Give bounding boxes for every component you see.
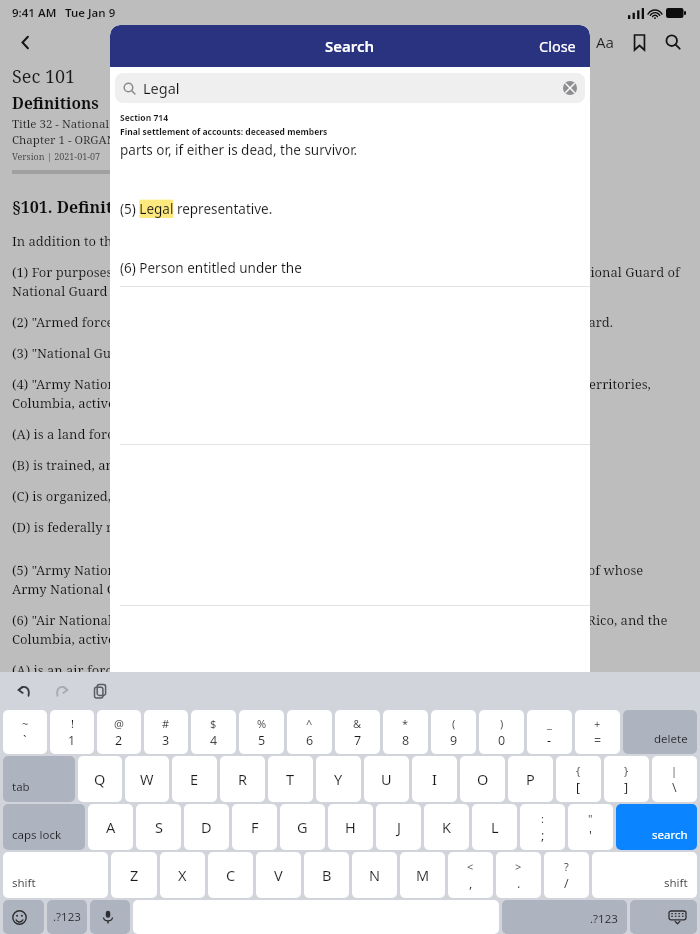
button[interactable]: Redo (46, 675, 78, 707)
button[interactable]: delete (623, 710, 697, 754)
staticText: (5) Legal representative. (120, 200, 273, 218)
button[interactable]: C (208, 852, 253, 898)
button[interactable]: Z (111, 852, 157, 898)
button[interactable]: & (335, 710, 380, 754)
button[interactable]: Section 714 (110, 109, 590, 159)
staticText: E (190, 769, 199, 789)
staticText: U (381, 769, 392, 789)
button[interactable]: G (280, 804, 325, 850)
button[interactable]: @ (97, 710, 141, 754)
button[interactable]: " (568, 804, 613, 850)
button[interactable]: M (400, 852, 445, 898)
staticText: V (274, 865, 283, 885)
button[interactable]: .?123 (502, 900, 627, 934)
button[interactable]: (6) Person entitled under the (110, 259, 590, 277)
button[interactable]: E (172, 756, 217, 802)
button[interactable]: % (239, 710, 284, 754)
button[interactable]: ? (544, 852, 589, 898)
button[interactable]: Paste (84, 675, 116, 707)
button[interactable]: caps lock (3, 804, 85, 850)
button[interactable]: W (125, 756, 169, 802)
button[interactable]: : (520, 804, 565, 850)
staticText: / (564, 875, 569, 892)
staticText: _ (547, 716, 552, 731)
button[interactable]: F (232, 804, 277, 850)
button[interactable]: + (575, 710, 620, 754)
staticText: (D) is federally recognized. (12, 754, 178, 772)
button[interactable]: P (508, 756, 553, 802)
button[interactable]: ) (479, 710, 524, 754)
staticText: delete (654, 731, 688, 747)
button[interactable]: V (256, 852, 301, 898)
button[interactable]: shift (592, 852, 697, 898)
staticText: I (432, 769, 437, 789)
button[interactable]: B (304, 852, 349, 898)
staticText: ! (71, 716, 74, 731)
button[interactable]: Search (656, 25, 690, 59)
button[interactable]: L (472, 804, 517, 850)
button[interactable]: X (160, 852, 205, 898)
button[interactable]: Bookmark (622, 25, 656, 59)
button[interactable]: (5) Legal representative. (110, 200, 590, 218)
staticText: (B) is trained, and has its officers app… (12, 692, 454, 710)
button[interactable]: Legal (115, 73, 585, 103)
button[interactable]: $ (191, 710, 236, 754)
button[interactable]: Q (78, 756, 122, 802)
staticText: Close (539, 36, 576, 56)
button[interactable]: tab (3, 756, 75, 802)
button[interactable]: K (424, 804, 469, 850)
button[interactable]: ~ (3, 710, 47, 754)
staticText: caps lock (12, 827, 62, 843)
button[interactable]: Back (8, 25, 42, 59)
button[interactable]: O (460, 756, 505, 802)
button[interactable]: mic (90, 900, 130, 934)
button[interactable]: < (448, 852, 493, 898)
staticText: [ (576, 779, 581, 796)
button[interactable]: # (144, 710, 188, 754)
button[interactable]: N (352, 852, 397, 898)
button[interactable]: U (364, 756, 409, 802)
button[interactable]: Close (531, 30, 584, 62)
staticText: Version | 2021-01-07 (12, 150, 101, 162)
staticText: Aa (596, 32, 615, 52)
button[interactable]: R (220, 756, 265, 802)
button[interactable]: I (412, 756, 457, 802)
button[interactable]: kb (630, 900, 697, 934)
button[interactable]: J (376, 804, 421, 850)
staticText: 6 (306, 732, 314, 749)
button[interactable]: D (184, 804, 229, 850)
button[interactable]: ( (431, 710, 476, 754)
button[interactable]: Clear (563, 81, 577, 95)
button[interactable]: Text size (588, 25, 622, 59)
button[interactable]: > (496, 852, 541, 898)
button[interactable]: Undo (8, 675, 40, 707)
staticText: Y (334, 769, 343, 789)
button[interactable]: ^ (287, 710, 332, 754)
button[interactable]: { (556, 756, 601, 802)
button[interactable]: shift (3, 852, 108, 898)
staticText: C (226, 865, 236, 885)
staticText: (3) "National Guard" means the Army Nati… (12, 344, 518, 362)
staticText: J (397, 817, 401, 837)
button[interactable]: S (136, 804, 181, 850)
button[interactable]: emoji (3, 900, 44, 934)
button[interactable]: T (268, 756, 313, 802)
button[interactable]: search (616, 804, 697, 850)
staticText: T (286, 769, 295, 789)
button[interactable]: } (604, 756, 649, 802)
staticText: tab (12, 779, 30, 795)
button[interactable]: ! (50, 710, 94, 754)
staticText: . (517, 875, 521, 892)
button[interactable]: | (652, 756, 697, 802)
staticText: L (491, 817, 499, 837)
button[interactable]: * (383, 710, 428, 754)
button[interactable]: .?123 (47, 900, 87, 934)
button[interactable]: Y (316, 756, 361, 802)
staticText: Z (130, 865, 139, 885)
button[interactable]: A (88, 804, 133, 850)
staticText: Title 32 - National Guard (12, 116, 147, 132)
staticText: §101. Definitions (12, 196, 147, 218)
button[interactable]: H (328, 804, 373, 850)
button[interactable]: _ (527, 710, 572, 754)
